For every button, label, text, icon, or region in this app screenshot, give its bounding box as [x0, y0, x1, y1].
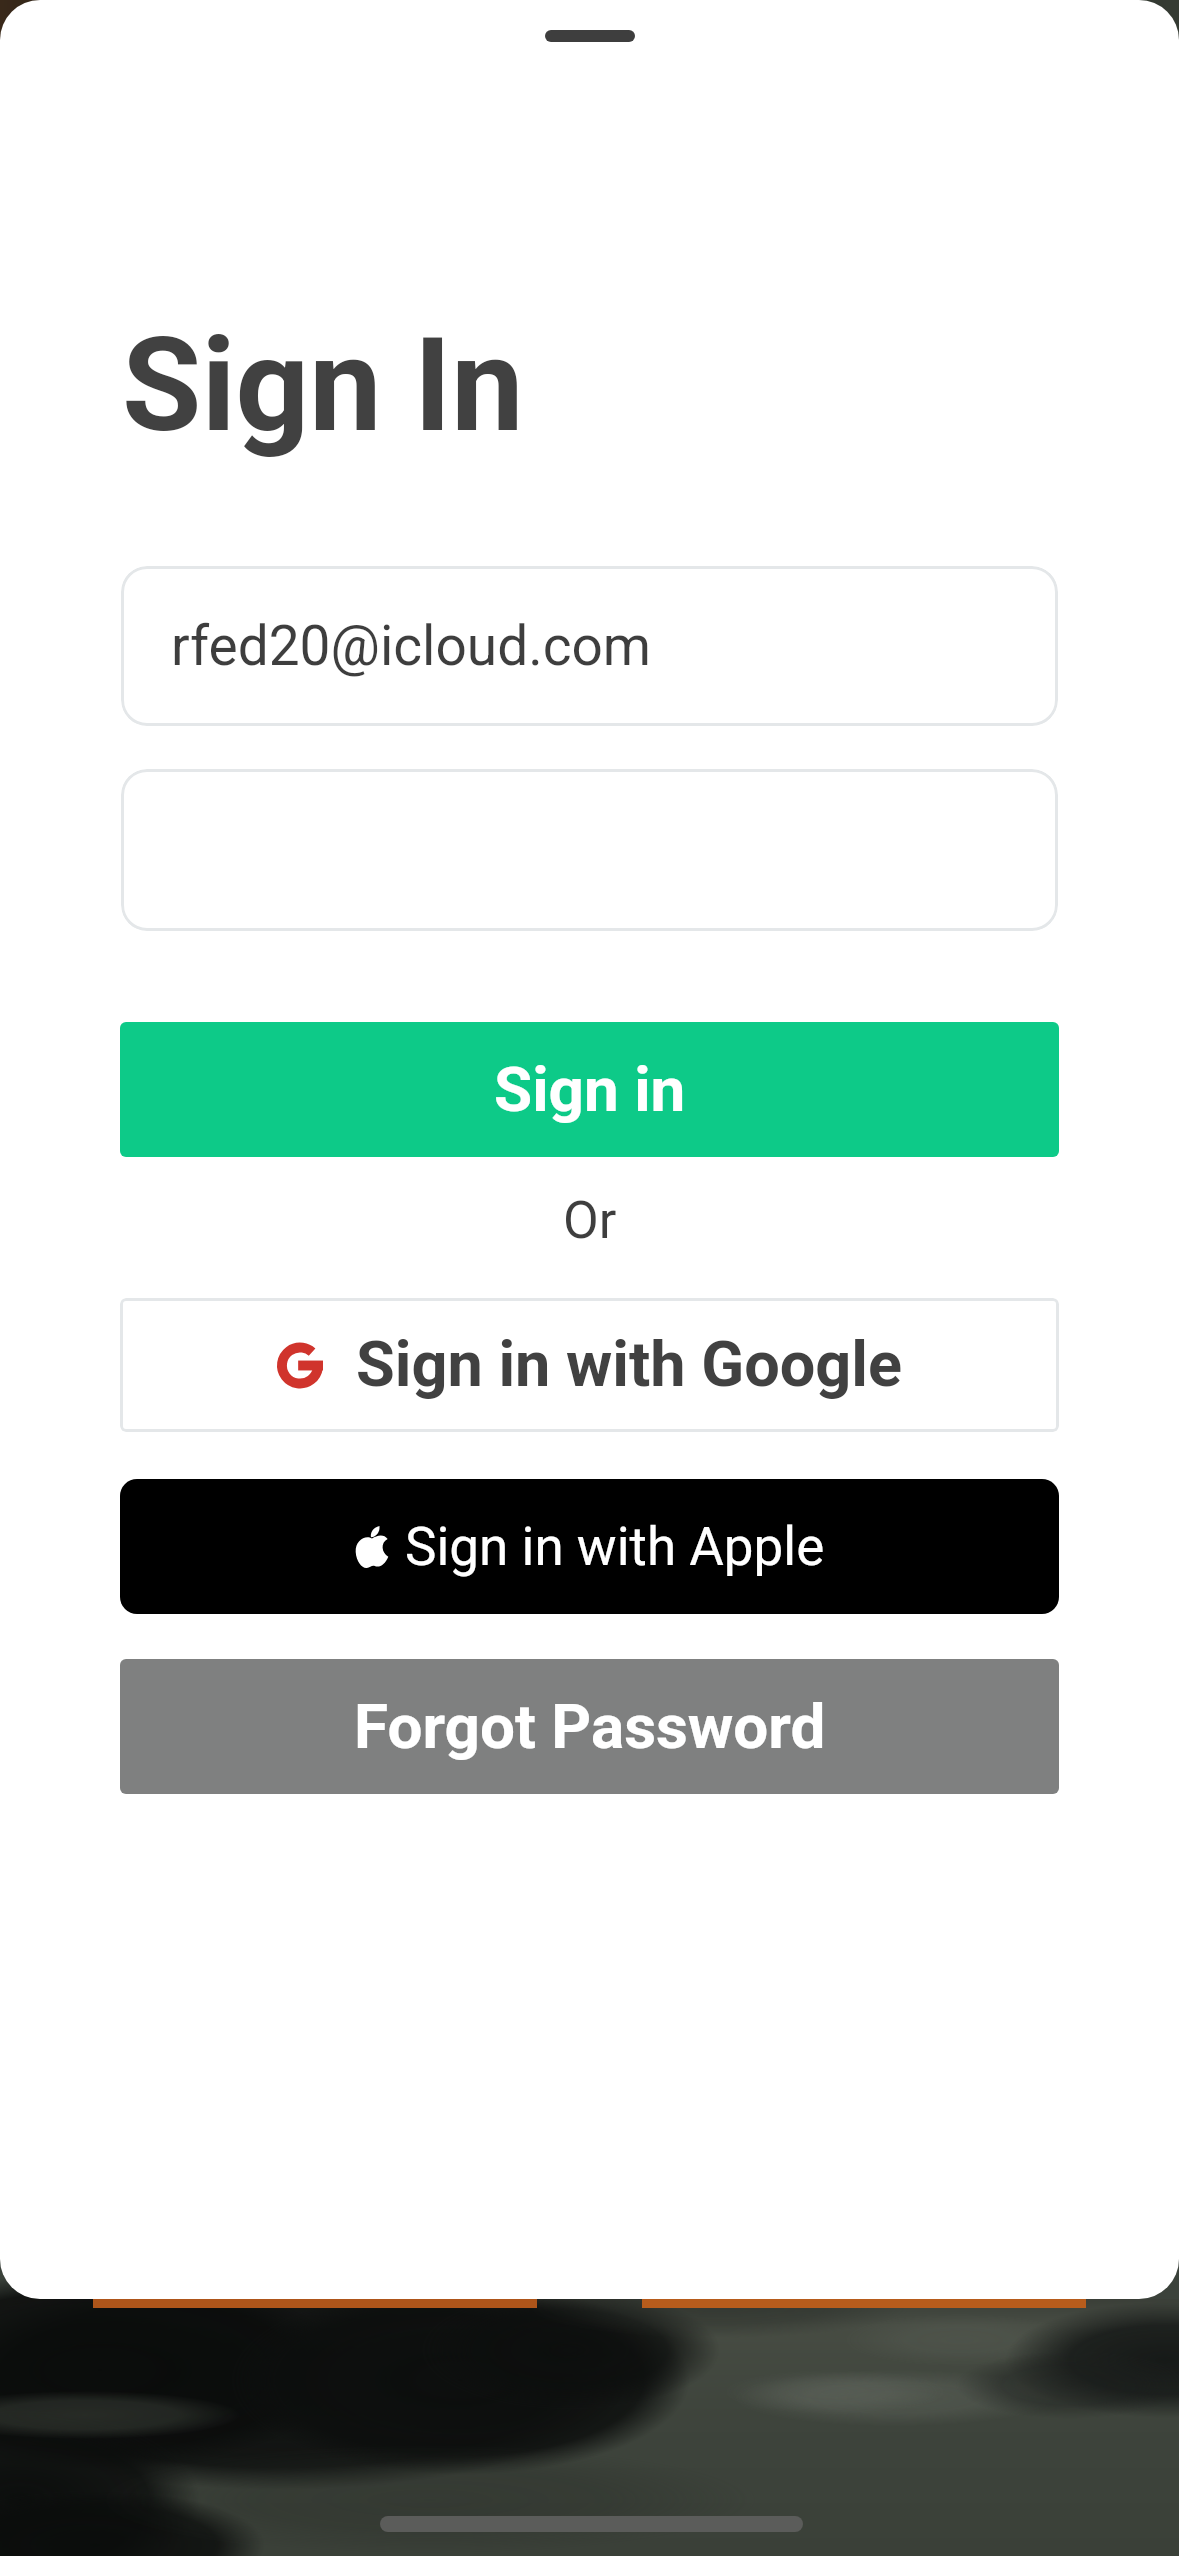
button[interactable] [121, 769, 1058, 931]
staticText: Sign in [494, 1053, 686, 1126]
button[interactable]: Sign in with Google [120, 1298, 1059, 1432]
staticText: Sign In [122, 310, 524, 461]
staticText: Forgot Password [354, 1690, 826, 1763]
button[interactable]: Forgot Password [120, 1659, 1059, 1794]
button[interactable]: rfed20@icloud.com [121, 566, 1058, 726]
staticText: Sign in with Google [356, 1328, 903, 1402]
staticText: rfed20@icloud.com [171, 614, 652, 678]
button[interactable]: Sign in [120, 1022, 1059, 1157]
staticText: Sign in with Apple [405, 1516, 825, 1578]
button[interactable]: Sign in with Apple [120, 1479, 1059, 1614]
staticText: Or [563, 1190, 617, 1251]
